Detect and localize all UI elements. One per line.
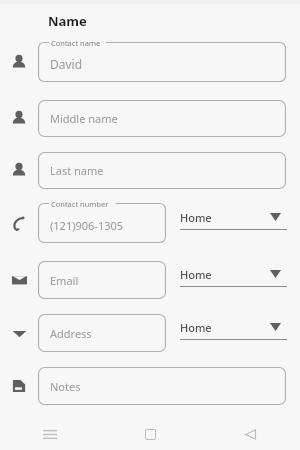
button[interactable]: (121)906-1305 xyxy=(38,203,166,243)
staticText: Middle name xyxy=(50,111,118,126)
staticText: Email xyxy=(50,273,79,288)
button[interactable]: Home xyxy=(100,418,200,450)
button[interactable]: Contact number xyxy=(0,204,38,242)
button[interactable]: Home xyxy=(180,261,287,299)
button[interactable]: Notes xyxy=(38,367,286,405)
button[interactable]: Last name xyxy=(38,152,286,189)
button[interactable]: Home xyxy=(180,204,287,242)
button[interactable]: Home xyxy=(180,314,287,352)
staticText: Last name xyxy=(50,163,104,178)
button[interactable]: Recent apps xyxy=(0,418,100,450)
button[interactable]: Contact name xyxy=(0,43,38,81)
button[interactable]: Middle name xyxy=(0,99,38,137)
staticText: (121)906-1305 xyxy=(50,218,124,233)
staticText: Name xyxy=(48,12,87,30)
button[interactable]: Middle name xyxy=(38,100,286,137)
button[interactable]: Address xyxy=(0,314,38,352)
staticText: Notes xyxy=(50,379,81,394)
staticText: Home xyxy=(180,320,212,335)
button[interactable]: David xyxy=(38,42,286,82)
button[interactable]: Last name xyxy=(0,151,38,189)
staticText: Home xyxy=(180,267,212,282)
staticText: David xyxy=(50,56,83,72)
button[interactable]: Email xyxy=(38,261,166,299)
staticText: Home xyxy=(180,210,212,225)
button[interactable]: Notes xyxy=(0,367,38,405)
staticText: Contact number xyxy=(51,199,109,209)
staticText: Contact name xyxy=(51,38,101,48)
button[interactable]: Address xyxy=(38,314,166,352)
button[interactable]: Email xyxy=(0,261,38,299)
staticText: Address xyxy=(50,326,92,341)
button[interactable]: Back xyxy=(200,418,300,450)
